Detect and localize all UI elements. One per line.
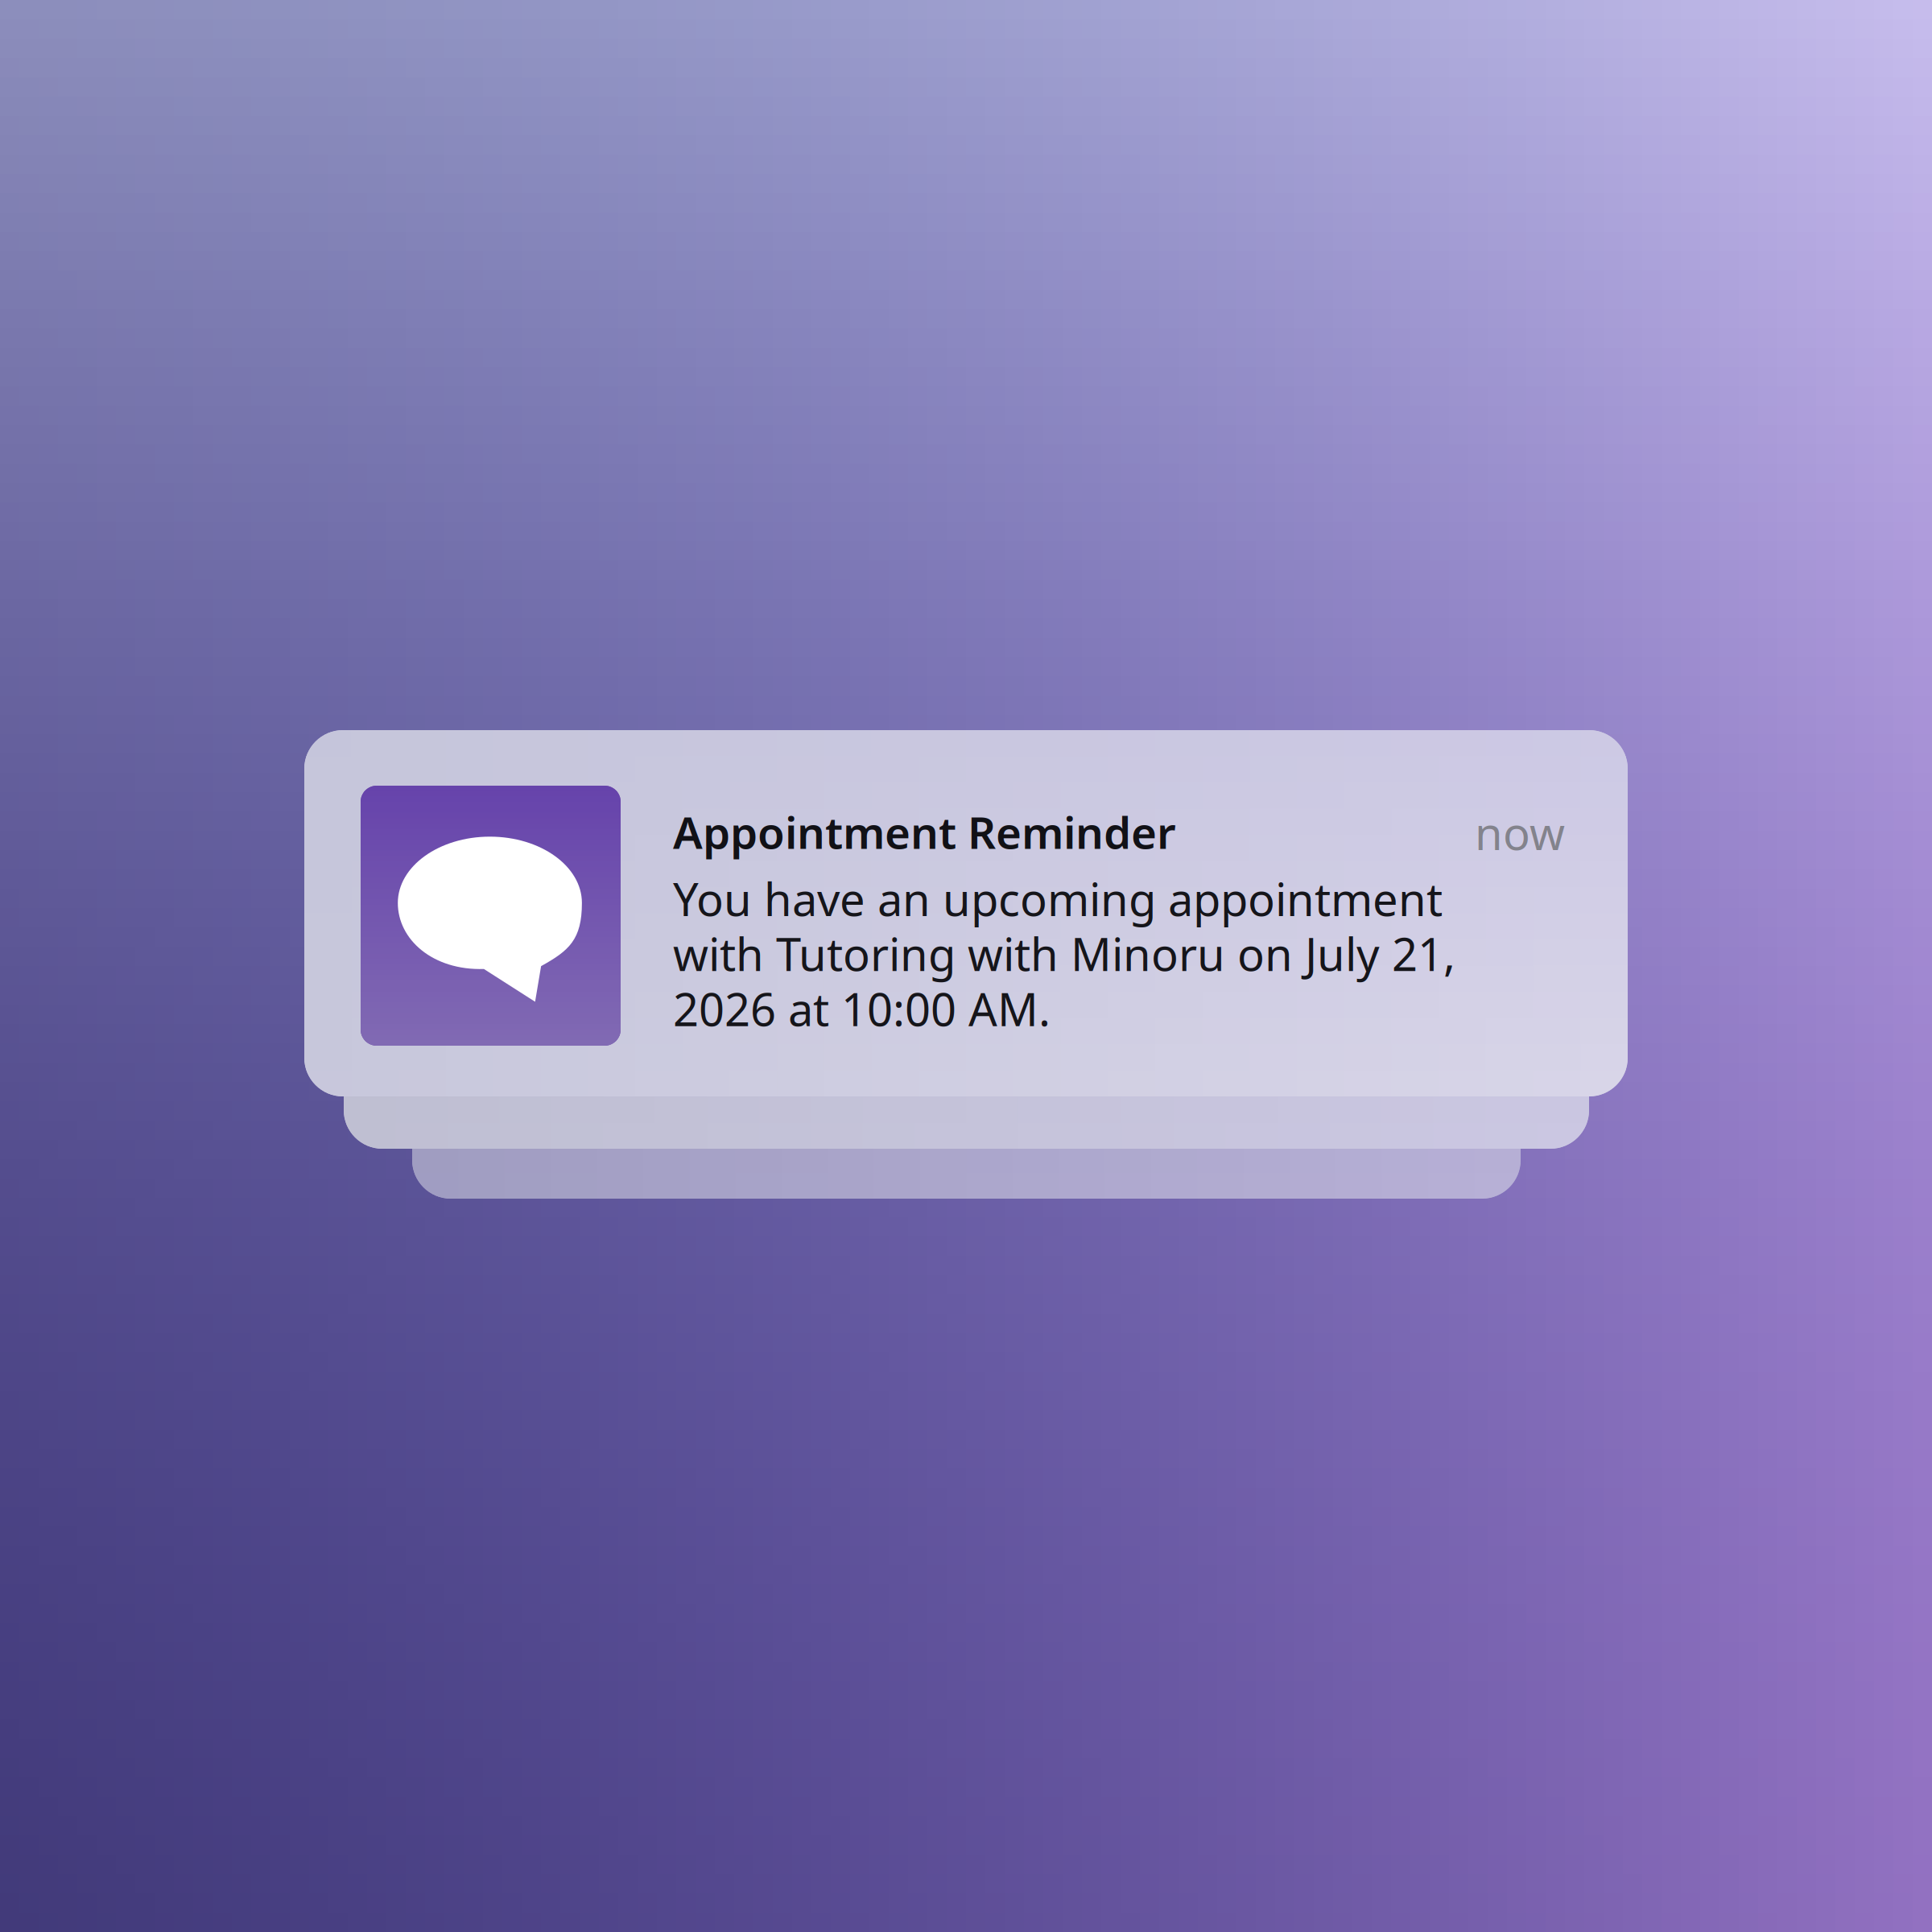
staticText: Appointment Reminder (673, 803, 1176, 861)
staticText: now (1475, 803, 1565, 862)
button[interactable]: Appointment Reminder (304, 730, 1628, 1096)
staticText: You have an upcoming appointment with Tu… (673, 869, 1455, 1039)
